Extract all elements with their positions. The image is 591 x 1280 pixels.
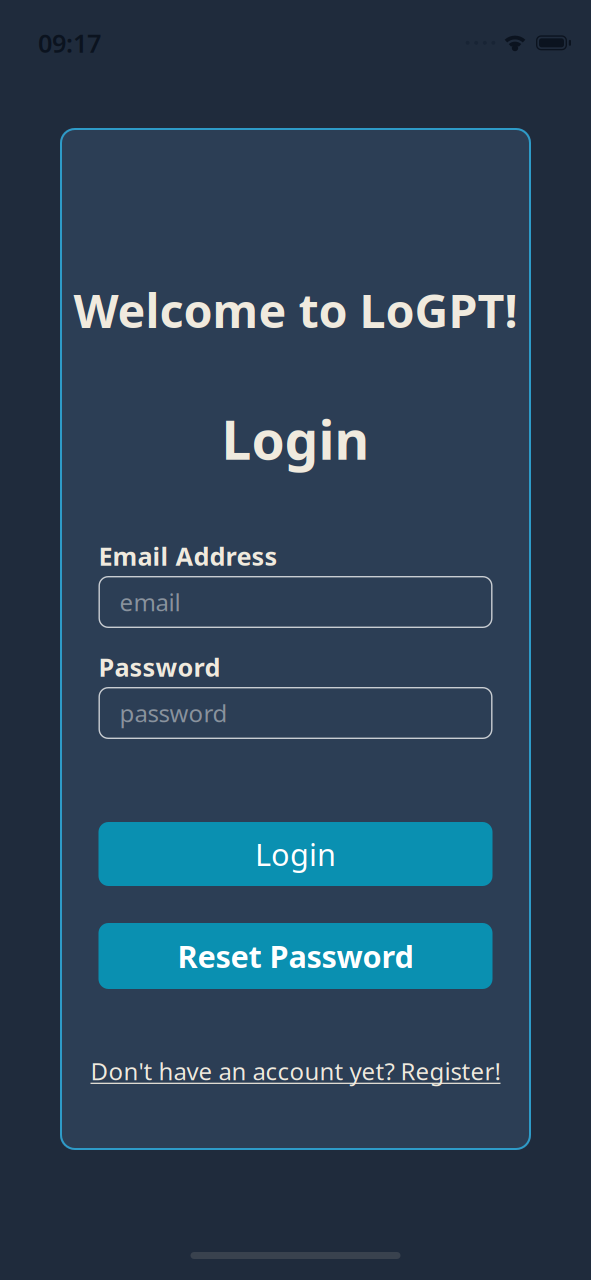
button[interactable]: Reset Password [98,923,492,989]
staticText: Email Address [98,539,277,573]
staticText: password [119,697,227,729]
staticText: 09:17 [38,26,101,60]
staticText: Password [98,650,220,684]
button[interactable]: password [98,687,492,739]
staticText: Reset Password [177,936,413,976]
button[interactable]: Don't have an account yet? Register! [90,1056,500,1086]
staticText: Don't have an account yet? Register! [90,1055,500,1087]
button[interactable]: email [98,576,492,628]
staticText: Login [255,834,336,874]
button[interactable]: Login [98,822,492,886]
staticText: Welcome to LoGPT! [73,279,517,341]
staticText: email [119,586,180,618]
staticText: Login [221,404,369,474]
